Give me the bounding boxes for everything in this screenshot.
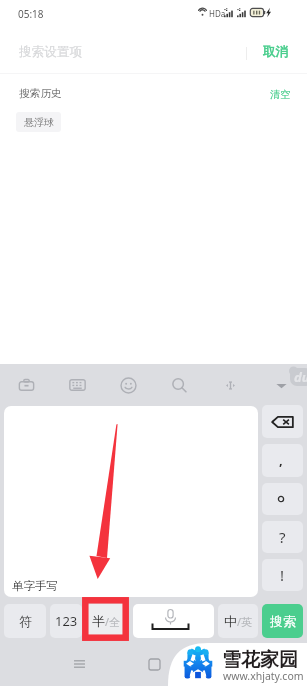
staticText: 雪花家园 xyxy=(222,648,298,672)
staticText: ? xyxy=(279,527,286,547)
button[interactable]: 单字手写 xyxy=(4,406,258,597)
button[interactable]: Recent apps xyxy=(59,648,99,680)
button[interactable]: Search xyxy=(154,364,205,406)
staticText: 搜索 xyxy=(270,613,296,629)
staticText: 搜索设置项 xyxy=(19,44,82,60)
staticText: 单字手写 xyxy=(12,579,58,593)
button[interactable]: 取消 xyxy=(252,34,300,73)
button[interactable]: 悬浮球 xyxy=(16,112,61,132)
staticText: 05:18 xyxy=(18,7,44,21)
button[interactable]: Backspace xyxy=(262,405,303,438)
button[interactable]: ， xyxy=(262,444,303,477)
button[interactable]: Collapse keyboard xyxy=(256,364,307,406)
button[interactable]: 搜索 xyxy=(262,604,303,638)
staticText: 悬浮球 xyxy=(24,116,54,129)
button[interactable]: Half or full width xyxy=(86,604,127,638)
staticText: 符 xyxy=(19,613,32,629)
button[interactable]: Keyboard xyxy=(52,364,103,406)
staticText: 搜索历史 xyxy=(19,87,62,100)
staticText: 取消 xyxy=(263,44,289,60)
staticText: 中 xyxy=(224,613,237,629)
staticText: HDa xyxy=(209,8,226,19)
button[interactable]: 。 xyxy=(262,483,303,515)
staticText: 半 xyxy=(92,613,105,629)
button[interactable]: Move cursor xyxy=(205,364,256,406)
button[interactable]: Space xyxy=(133,604,214,638)
staticText: du xyxy=(294,368,307,386)
button[interactable]: Emoji xyxy=(103,364,154,406)
button[interactable]: Tools xyxy=(0,364,52,406)
button[interactable]: ？ xyxy=(262,521,303,553)
staticText: /全 xyxy=(105,614,121,629)
button[interactable]: 清空 xyxy=(262,82,296,104)
button[interactable]: Back xyxy=(215,648,255,680)
button[interactable]: 符 xyxy=(4,604,46,638)
staticText: 123 xyxy=(55,612,78,630)
button[interactable]: Chinese or English xyxy=(218,604,258,638)
staticText: , xyxy=(279,451,283,469)
staticText: www.xhjaty.com xyxy=(223,669,304,683)
staticText: /英 xyxy=(237,614,253,629)
button[interactable]: 123 xyxy=(50,604,82,638)
button[interactable]: Home xyxy=(134,648,174,680)
staticText: 清空 xyxy=(270,88,291,101)
staticText: ! xyxy=(280,565,285,585)
button[interactable]: ！ xyxy=(262,559,303,591)
